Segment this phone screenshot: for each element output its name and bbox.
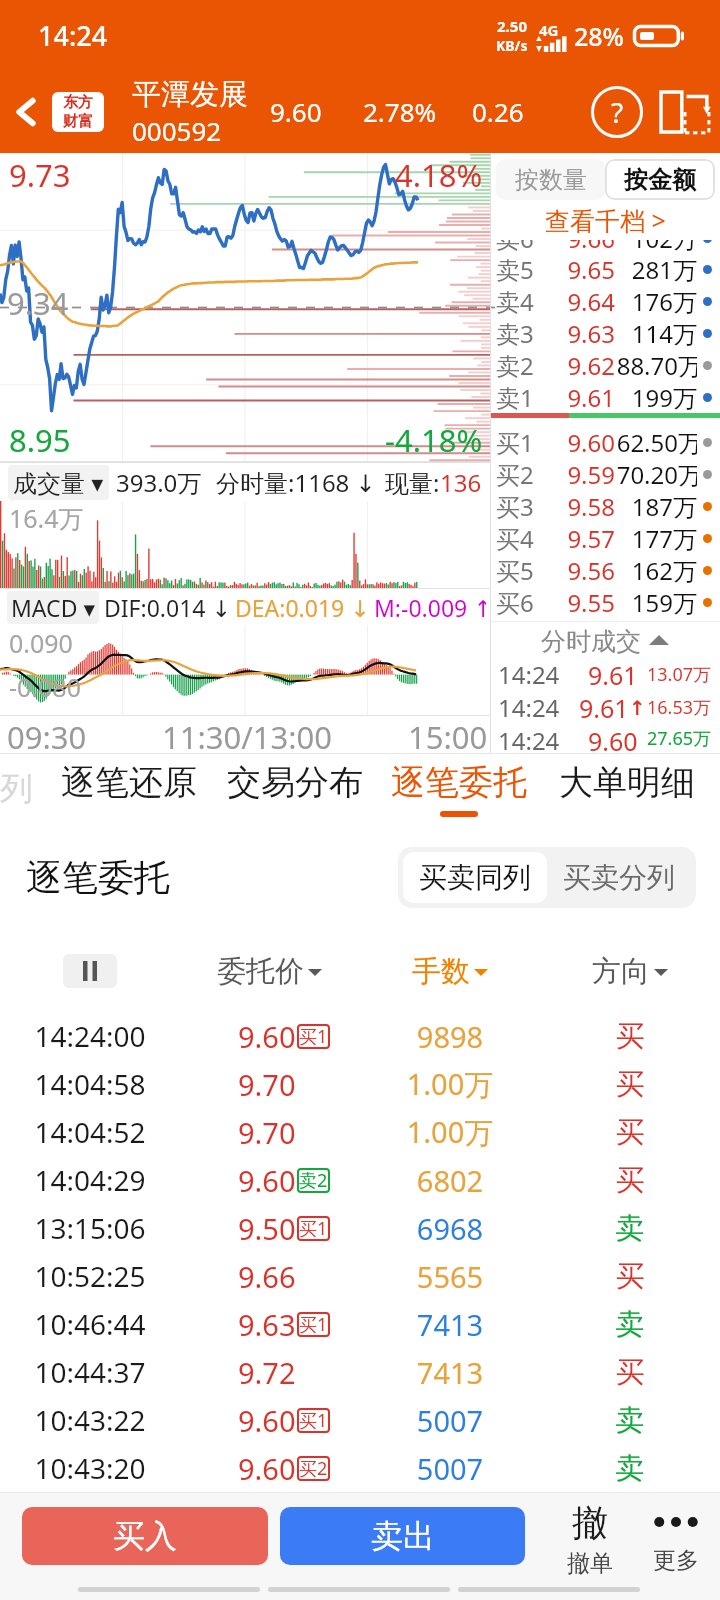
staticText: MACD ▾ <box>11 592 95 623</box>
button[interactable]: 买2 <box>491 458 720 490</box>
button[interactable]: 大单明细 <box>559 757 695 821</box>
staticText: 09:30 <box>7 716 87 753</box>
staticText: 分时成交 <box>541 623 648 657</box>
button[interactable]: Back <box>0 70 52 153</box>
staticText: 176万 <box>616 285 697 317</box>
staticText: 14:24 <box>498 691 560 724</box>
button[interactable]: 逐笔委托 <box>391 757 527 821</box>
staticText: 买1 <box>496 426 549 458</box>
staticText: 393.0万 <box>116 466 202 499</box>
staticText: 10:43:20 <box>0 1449 180 1487</box>
button[interactable]: Help <box>586 81 648 143</box>
button[interactable]: 买卖分列 <box>563 860 675 895</box>
button[interactable]: 方向 <box>540 930 720 1012</box>
button[interactable]: 分时成交 <box>491 622 720 658</box>
button[interactable]: 查看千档 > <box>491 200 720 240</box>
button[interactable]: 14:04:29 <box>0 1156 720 1204</box>
staticText: -0.080 <box>9 670 81 704</box>
staticText: 16.53万 <box>647 695 712 720</box>
button[interactable]: 10:43:20 <box>0 1444 720 1492</box>
button[interactable]: 更多 <box>638 1493 714 1578</box>
button[interactable]: 14:24:00 <box>0 1012 720 1060</box>
button[interactable]: 13:15:06 <box>0 1204 720 1252</box>
staticText: 9.60 <box>238 1017 296 1056</box>
button[interactable]: 撤 <box>552 1493 628 1578</box>
staticText: 方向 <box>592 953 650 990</box>
button[interactable]: 10:52:25 <box>0 1252 720 1300</box>
staticText: 281万 <box>616 253 697 285</box>
staticText: 买 <box>540 1018 720 1055</box>
button[interactable]: 买6 <box>491 586 720 618</box>
staticText: 10:44:37 <box>0 1353 180 1391</box>
staticText: 15:00 <box>408 716 488 753</box>
button[interactable]: 委托价 <box>180 930 360 1012</box>
button[interactable]: 买5 <box>491 554 720 586</box>
staticText: 70.20万 <box>616 458 697 490</box>
button[interactable]: 卖3 <box>491 317 720 349</box>
staticText: 列 <box>0 768 33 810</box>
staticText: 买1 <box>299 1408 328 1433</box>
staticText: 5565 <box>360 1257 540 1296</box>
staticText: 卖 <box>540 1450 720 1487</box>
staticText: 187万 <box>616 490 697 522</box>
button[interactable]: 按金额 <box>605 159 715 200</box>
button[interactable]: 卖5 <box>491 253 720 285</box>
button[interactable]: 交易分布 <box>227 757 363 821</box>
staticText: 28% <box>574 19 624 53</box>
button[interactable]: 成交量 ▾ <box>13 466 104 499</box>
staticText: 9.60 <box>238 1161 296 1200</box>
button[interactable]: 卖6 <box>491 240 720 253</box>
button[interactable]: 买4 <box>491 522 720 554</box>
staticText: 199万 <box>616 381 697 413</box>
staticText: 买2 <box>496 458 549 490</box>
button[interactable]: 卖4 <box>491 285 720 317</box>
button[interactable]: Pause updates <box>63 954 117 988</box>
button[interactable]: 按数量 <box>496 159 605 200</box>
staticText: 0.26 <box>472 94 524 129</box>
button[interactable]: MACD ▾ <box>11 592 95 623</box>
staticText: 卖2 <box>496 349 549 381</box>
button[interactable]: Rotate to landscape <box>654 81 716 143</box>
staticText: 买入 <box>113 1516 177 1556</box>
button[interactable]: 10:46:44 <box>0 1300 720 1348</box>
staticText: 14:04:52 <box>0 1113 180 1151</box>
staticText: 10:46:44 <box>0 1305 180 1343</box>
button[interactable]: 卖1 <box>491 381 720 413</box>
staticText: 7413 <box>360 1305 540 1344</box>
button[interactable]: 买卖同列 <box>419 860 531 895</box>
staticText: 9.61 <box>579 691 629 724</box>
staticText: 9.60 <box>238 1401 296 1440</box>
button[interactable]: 逐笔还原 <box>61 757 197 821</box>
staticText: 5007 <box>360 1449 540 1488</box>
button[interactable]: 10:44:37 <box>0 1348 720 1396</box>
staticText: 0.090 <box>9 626 73 660</box>
staticText: 14:04:58 <box>0 1065 180 1103</box>
button[interactable]: 手数 <box>360 930 540 1012</box>
staticText: 9.64 <box>549 285 615 317</box>
button[interactable]: 买入 <box>22 1507 268 1565</box>
staticText: 卖5 <box>496 253 549 285</box>
button[interactable]: 买1 <box>491 426 720 458</box>
staticText: 买2 <box>299 1456 328 1481</box>
staticText: 买卖同列 <box>419 860 531 895</box>
button[interactable]: 14:24 <box>491 658 720 691</box>
button[interactable]: 卖出 <box>280 1507 525 1565</box>
staticText: 14:24 <box>38 17 108 54</box>
staticText: 交易分布 <box>227 761 363 804</box>
staticText: M:-0.009 ↑ <box>374 592 486 623</box>
button[interactable]: 14:24 <box>491 724 720 753</box>
staticText: 按数量 <box>515 165 587 195</box>
staticText: 9.60 <box>238 1449 296 1488</box>
staticText: 9.70 <box>238 1113 296 1152</box>
button[interactable]: 14:04:52 <box>0 1108 720 1156</box>
button[interactable]: 10:43:22 <box>0 1396 720 1444</box>
button[interactable]: 卖2 <box>491 349 720 381</box>
staticText: 62.50万 <box>616 426 697 458</box>
button[interactable]: 买3 <box>491 490 720 522</box>
staticText: 14:24:00 <box>0 1017 180 1055</box>
staticText: 9.50 <box>238 1209 296 1248</box>
staticText: 成交量 ▾ <box>13 466 104 499</box>
button[interactable]: 14:04:58 <box>0 1060 720 1108</box>
button[interactable]: 14:24 <box>491 691 720 724</box>
staticText: 14:04:29 <box>0 1161 180 1199</box>
